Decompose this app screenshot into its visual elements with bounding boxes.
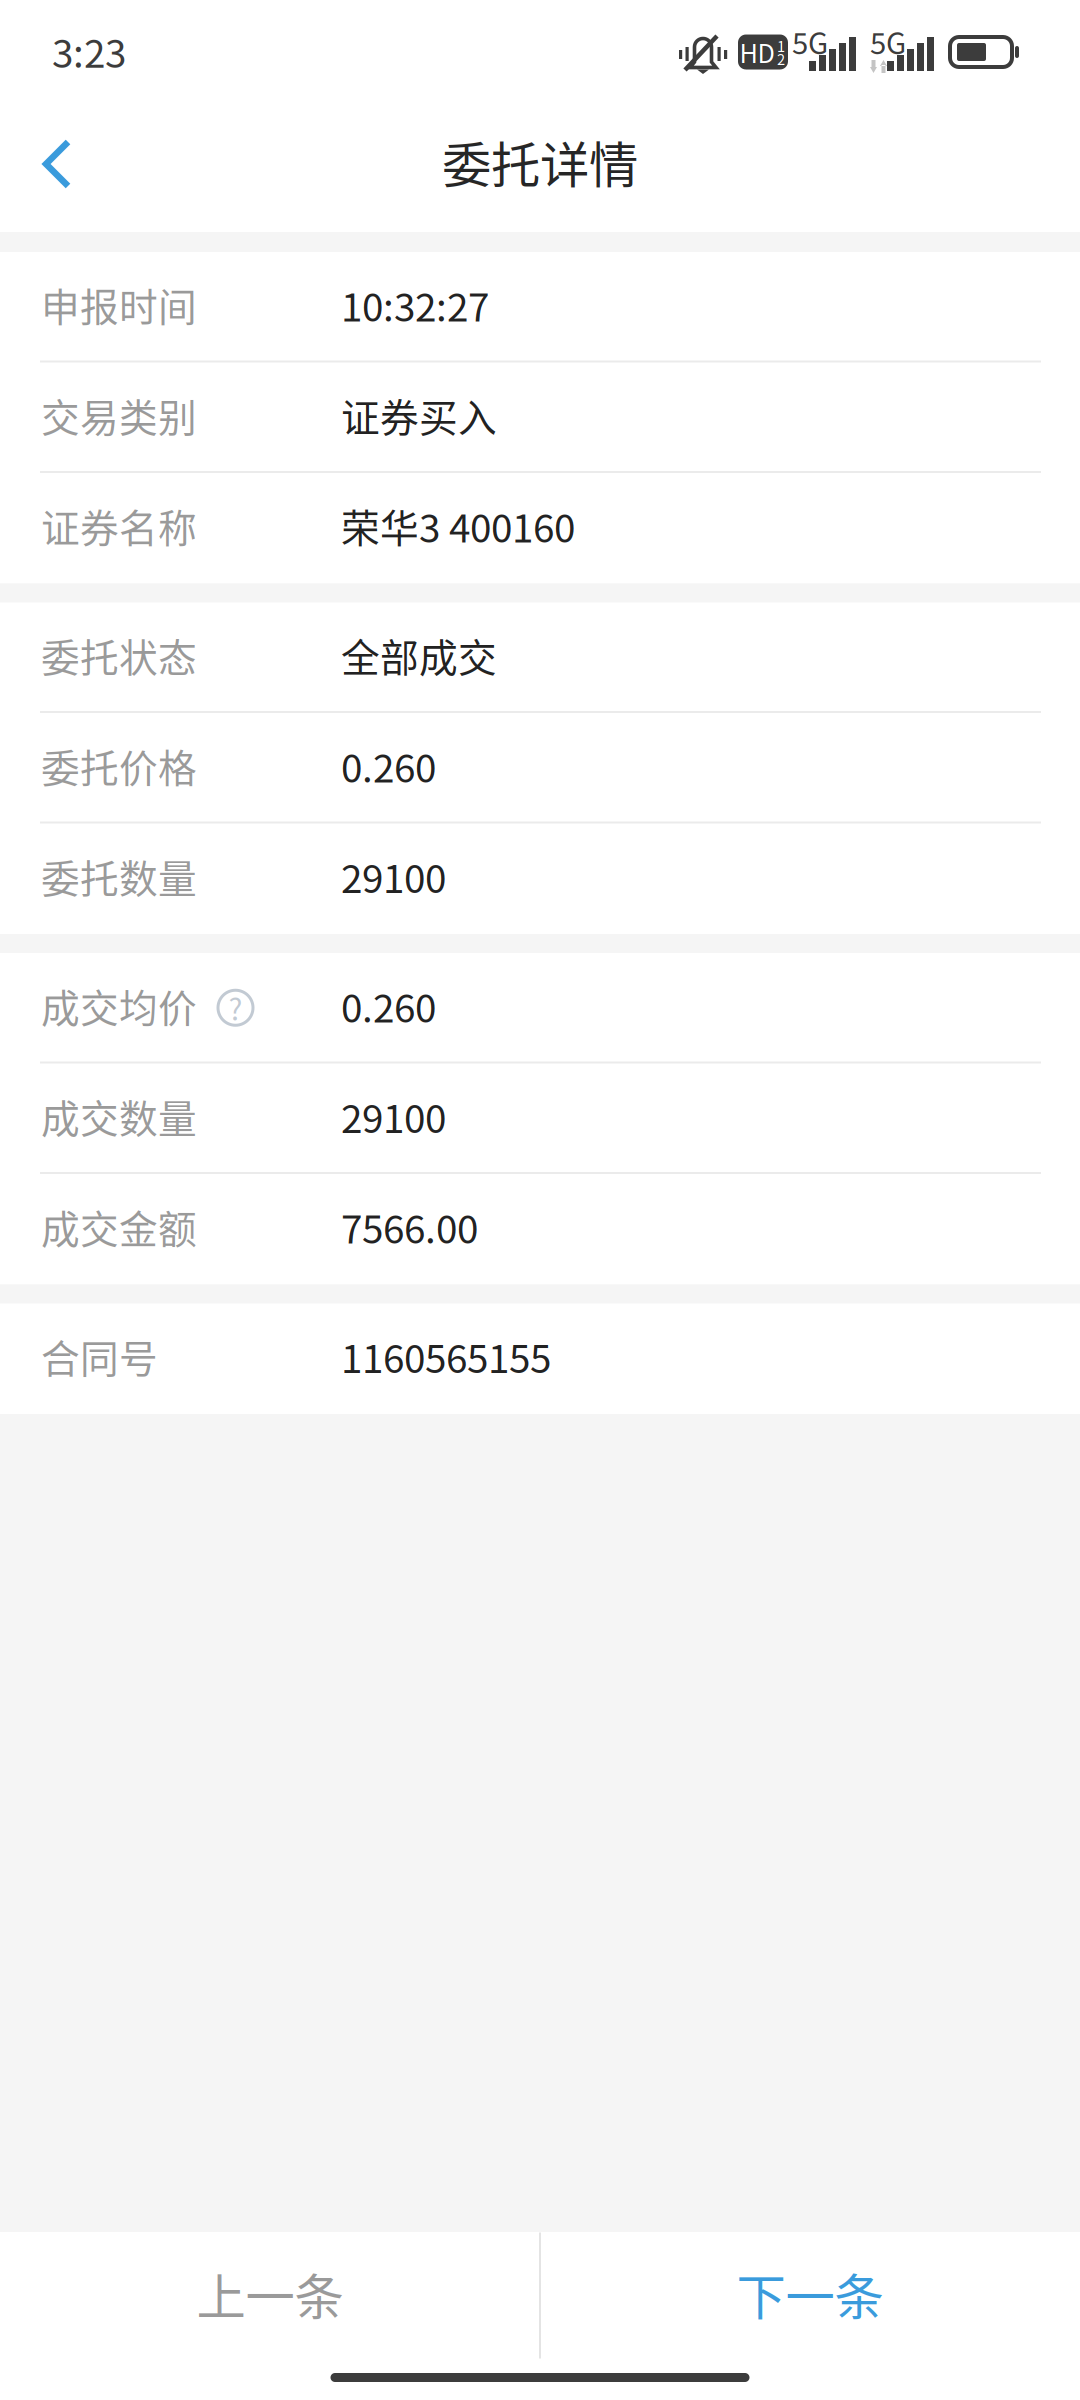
staticText: 0.260: [341, 978, 436, 1034]
staticText: 5G: [792, 20, 828, 63]
staticText: 证券名称: [41, 498, 197, 554]
button[interactable]: 下一条: [540, 2232, 1080, 2359]
button[interactable]: 上一条: [0, 2232, 540, 2359]
staticText: 委托价格: [41, 738, 197, 794]
staticText: 委托数量: [41, 848, 197, 904]
staticText: HD: [739, 34, 774, 70]
staticText: 5G: [870, 20, 906, 63]
staticText: 交易类别: [41, 387, 197, 443]
staticText: 29100: [341, 848, 446, 904]
staticText: 2: [777, 48, 785, 69]
staticText: 证券买入: [341, 387, 497, 443]
staticText: 1160565155: [341, 1328, 551, 1384]
staticText: 7566.00: [341, 1199, 478, 1255]
staticText: 全部成交: [341, 627, 497, 683]
staticText: 0.260: [341, 738, 436, 794]
staticText: 荣华3 400160: [341, 498, 575, 554]
staticText: 成交数量: [41, 1088, 197, 1144]
staticText: 上一条: [196, 2258, 343, 2329]
staticText: 10:32:27: [341, 277, 489, 333]
staticText: 委托状态: [41, 627, 197, 683]
staticText: 成交均价: [41, 978, 197, 1034]
staticText: 成交金额: [41, 1199, 197, 1255]
staticText: 下一条: [736, 2258, 883, 2329]
staticText: 3:23: [52, 23, 126, 79]
staticText: 29100: [341, 1088, 446, 1144]
staticText: 委托详情: [442, 126, 638, 197]
staticText: 申报时间: [41, 277, 197, 333]
staticText: 合同号: [41, 1328, 158, 1384]
button[interactable]: 成交均价说明: [197, 986, 253, 1025]
staticText: 1: [777, 35, 785, 56]
button[interactable]: Back: [0, 96, 130, 232]
staticText: ?: [228, 986, 242, 1029]
